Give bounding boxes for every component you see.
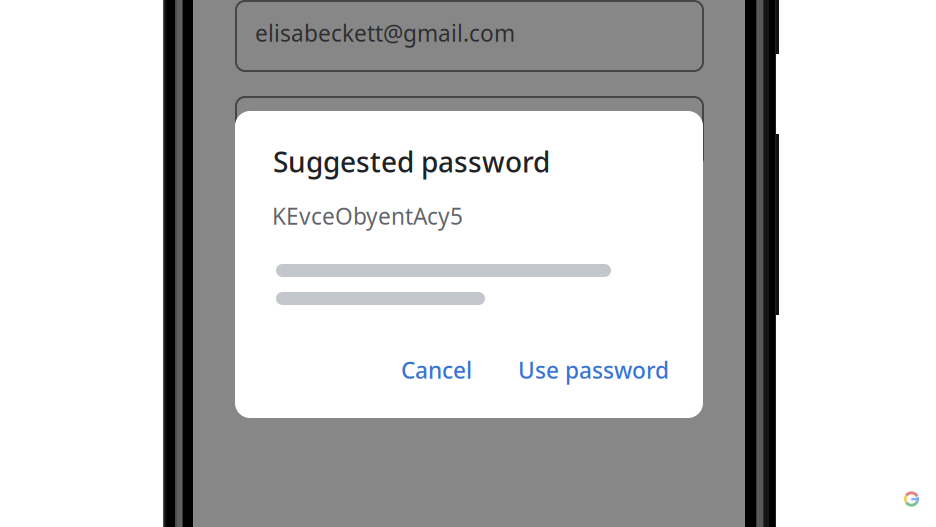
staticText: KEvceObyentAcy5 <box>272 201 463 231</box>
button[interactable]: Password <box>236 97 703 167</box>
staticText: Suggested password <box>273 143 550 180</box>
button[interactable]: Use password <box>506 343 681 397</box>
staticText: Cancel <box>401 355 472 385</box>
button[interactable]: Cancel <box>389 343 484 397</box>
staticText: elisabeckett@gmail.com <box>255 18 515 48</box>
staticText: Use password <box>518 355 669 385</box>
button[interactable]: elisabeckett@gmail.com <box>236 1 703 71</box>
